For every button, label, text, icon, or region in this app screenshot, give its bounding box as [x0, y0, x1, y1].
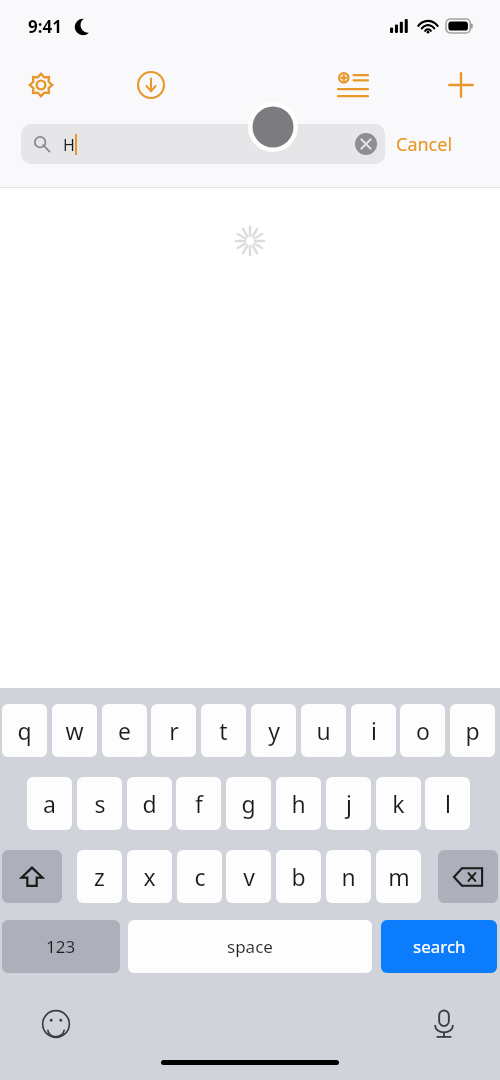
button[interactable]: Emoji [32, 1000, 80, 1048]
staticText: h [291, 788, 306, 819]
button[interactable]: v [226, 850, 271, 903]
staticText: 9:41 [28, 15, 62, 38]
staticText: 123 [46, 935, 76, 958]
button[interactable]: x [127, 850, 172, 903]
staticText: a [43, 788, 56, 819]
button[interactable]: Backspace [438, 850, 498, 903]
staticText: x [143, 861, 156, 892]
staticText: y [268, 715, 280, 746]
button[interactable]: space [128, 920, 372, 973]
button[interactable]: i [351, 704, 396, 757]
button[interactable]: 123 [2, 920, 120, 973]
staticText: r [169, 715, 179, 746]
staticText: z [94, 861, 105, 892]
button[interactable]: f [176, 777, 221, 830]
staticText: m [388, 861, 410, 892]
button[interactable]: j [326, 777, 371, 830]
staticText: v [243, 861, 255, 892]
button[interactable]: t [201, 704, 246, 757]
button[interactable]: w [52, 704, 97, 757]
button[interactable]: r [151, 704, 196, 757]
staticText: j [346, 788, 352, 819]
staticText: Cancel [396, 132, 453, 157]
button[interactable]: search [381, 920, 497, 973]
button[interactable]: p [450, 704, 495, 757]
staticText: search [413, 935, 466, 958]
button[interactable]: c [177, 850, 222, 903]
button[interactable]: h [276, 777, 321, 830]
button[interactable]: k [376, 777, 421, 830]
button[interactable]: Add to list [331, 65, 375, 105]
button[interactable]: Add [439, 65, 483, 105]
staticText: t [219, 715, 228, 746]
staticText: l [445, 788, 451, 819]
staticText: p [465, 715, 480, 746]
button[interactable]: z [77, 850, 122, 903]
button[interactable]: e [102, 704, 147, 757]
staticText: n [341, 861, 356, 892]
button[interactable]: l [425, 777, 470, 830]
button[interactable]: n [326, 850, 371, 903]
staticText: space [227, 935, 273, 958]
button[interactable]: Settings [19, 65, 63, 105]
button[interactable]: H [21, 124, 385, 164]
staticText: g [241, 788, 256, 819]
button[interactable]: Download [129, 65, 173, 105]
staticText: f [195, 788, 203, 819]
staticText: k [392, 788, 405, 819]
button[interactable]: a [27, 777, 72, 830]
button[interactable]: Cancel [396, 127, 482, 161]
staticText: e [118, 715, 131, 746]
button[interactable]: m [376, 850, 421, 903]
staticText: q [17, 715, 32, 746]
staticText: c [194, 861, 206, 892]
staticText: i [371, 715, 377, 746]
staticText: d [142, 788, 157, 819]
staticText: H [63, 134, 75, 156]
button[interactable]: q [2, 704, 47, 757]
button[interactable]: d [127, 777, 172, 830]
staticText: b [291, 861, 306, 892]
button[interactable]: Clear text [355, 133, 377, 155]
button[interactable]: g [226, 777, 271, 830]
staticText: o [416, 715, 430, 746]
button[interactable]: y [251, 704, 296, 757]
staticText: s [94, 788, 106, 819]
button[interactable]: u [301, 704, 346, 757]
button[interactable]: s [77, 777, 122, 830]
button[interactable]: Shift [2, 850, 62, 903]
staticText: w [65, 715, 84, 746]
button[interactable]: b [276, 850, 321, 903]
button[interactable]: o [400, 704, 445, 757]
staticText: u [316, 715, 331, 746]
button[interactable]: Dictation [420, 1000, 468, 1048]
